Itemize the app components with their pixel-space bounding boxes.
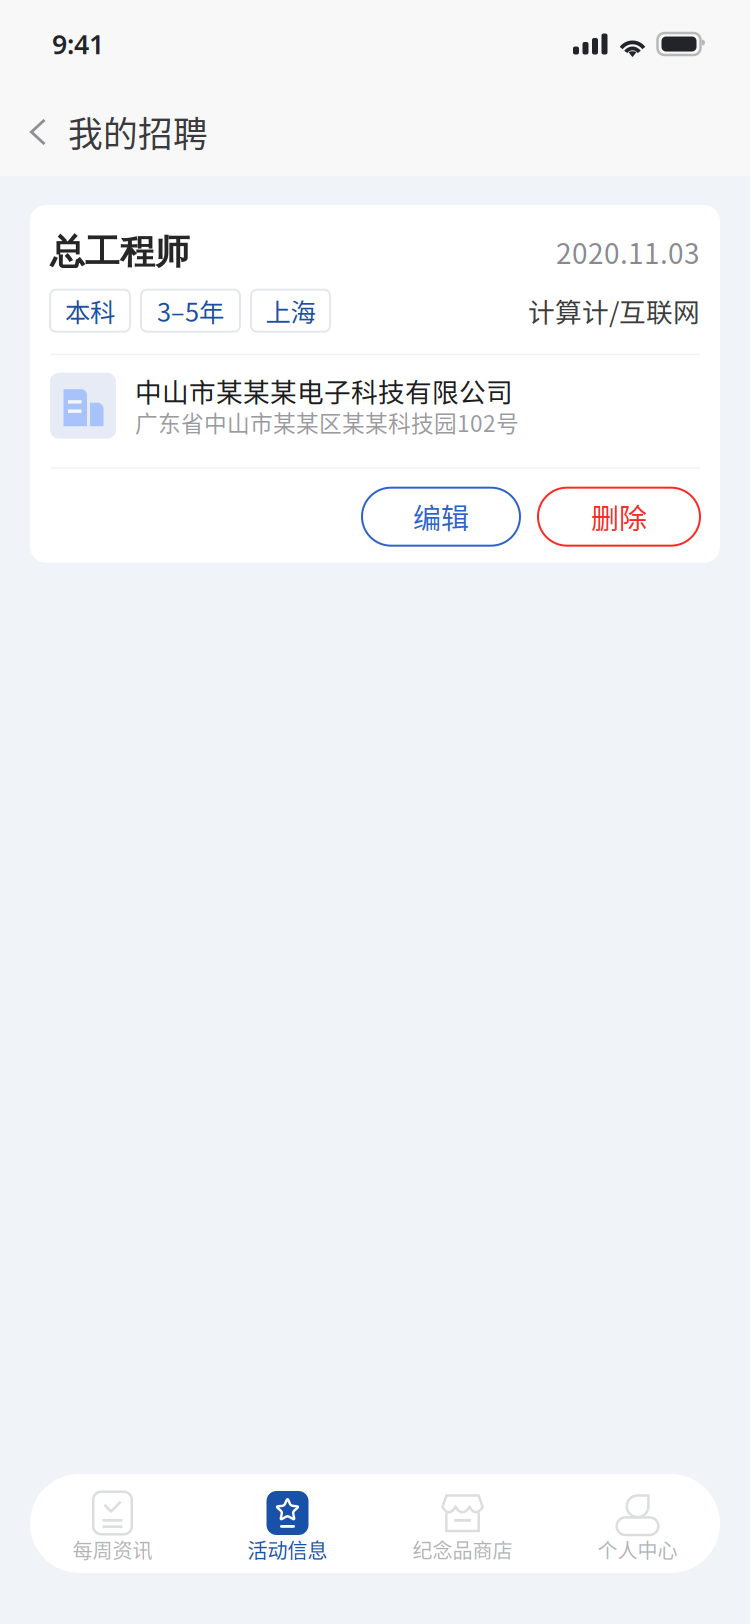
button[interactable]: 活动信息	[200, 1474, 375, 1573]
staticText: 3–5年	[157, 292, 224, 329]
staticText: 活动信息	[247, 1535, 327, 1564]
staticText: 中山市某某某电子科技有限公司	[135, 371, 513, 410]
button[interactable]: 个人中心	[550, 1474, 725, 1573]
button[interactable]: Back	[0, 88, 68, 176]
staticText: 删除	[591, 496, 647, 537]
staticText: 计算计/互联网	[528, 291, 700, 330]
button[interactable]: 每周资讯	[25, 1474, 200, 1573]
staticText: 纪念品商店	[412, 1535, 512, 1564]
staticText: 编辑	[413, 496, 469, 537]
button[interactable]: 删除	[538, 488, 700, 546]
staticText: 总工程师	[50, 230, 190, 274]
staticText: 9:41	[52, 26, 104, 62]
staticText: 我的招聘	[68, 107, 208, 157]
staticText: 广东省中山市某某区某某科技园102号	[135, 406, 519, 439]
staticText: 本科	[65, 292, 115, 329]
staticText: 每周资讯	[72, 1535, 152, 1564]
staticText: 上海	[265, 292, 315, 329]
staticText: 个人中心	[597, 1535, 677, 1564]
button[interactable]: 编辑	[362, 488, 520, 546]
staticText: 2020.11.03	[556, 232, 700, 272]
button[interactable]: 纪念品商店	[375, 1474, 550, 1573]
